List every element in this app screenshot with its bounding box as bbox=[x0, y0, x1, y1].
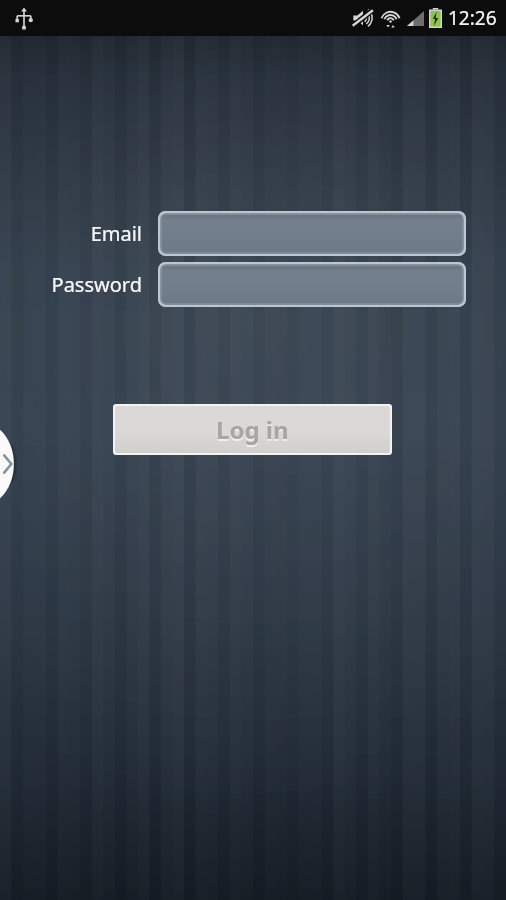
staticText: Log in bbox=[216, 415, 289, 448]
button[interactable]: Open navigation drawer bbox=[0, 423, 22, 505]
staticText: Email bbox=[22, 220, 142, 247]
button[interactable]: Text input field bbox=[158, 211, 466, 256]
button[interactable]: Text input field bbox=[158, 262, 466, 307]
staticText: Log in bbox=[216, 413, 289, 446]
staticText: 12:26 bbox=[448, 5, 497, 31]
staticText: Password bbox=[22, 271, 142, 298]
button[interactable]: Log in bbox=[113, 404, 392, 455]
